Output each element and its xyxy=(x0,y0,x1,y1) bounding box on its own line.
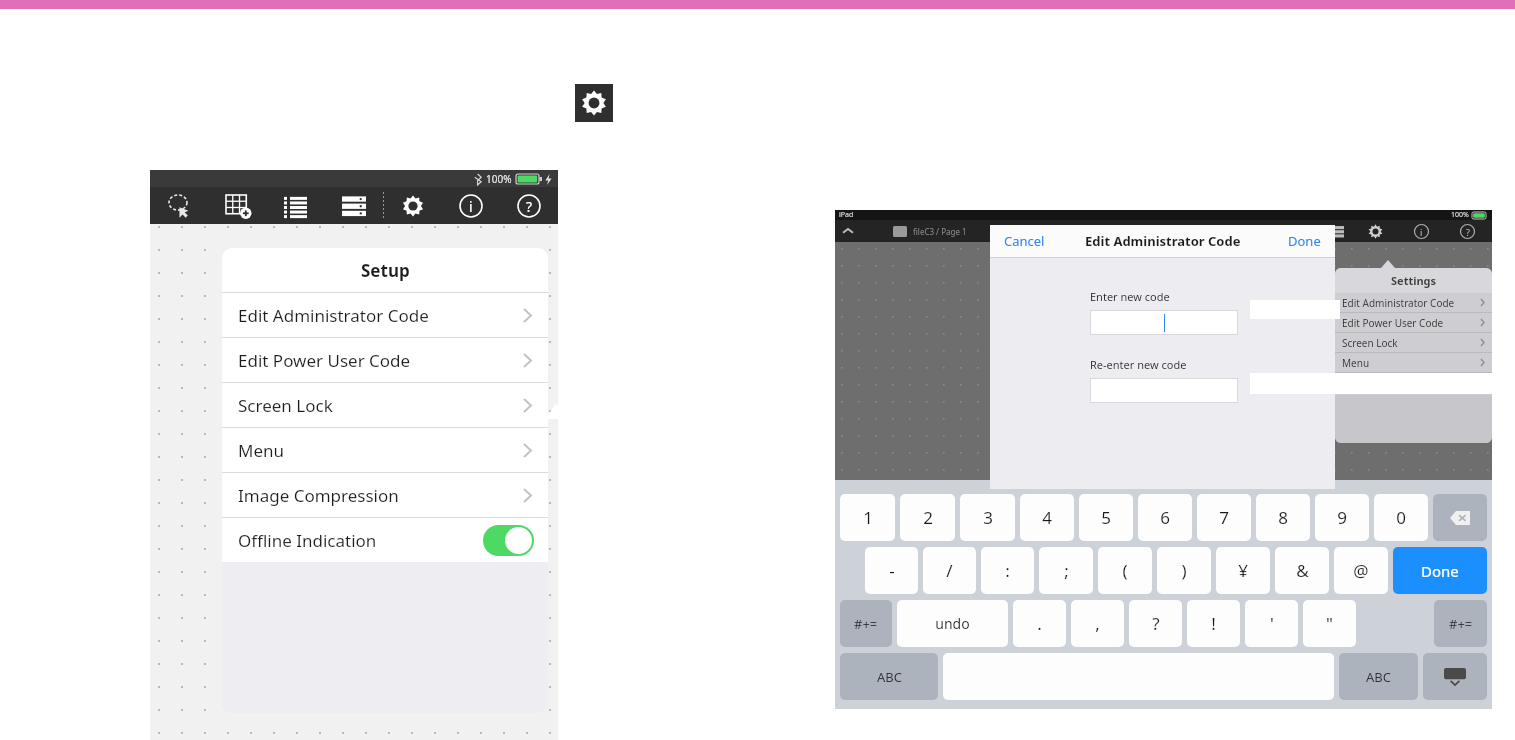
button[interactable]: Backspace xyxy=(1433,494,1487,541)
button[interactable]: 8 xyxy=(1256,494,1310,541)
button[interactable]: Edit Administrator Code xyxy=(222,293,548,337)
staticText: #+= xyxy=(1449,615,1473,633)
button[interactable]: . xyxy=(1013,600,1066,647)
button[interactable]: ! xyxy=(1187,600,1240,647)
button[interactable]: Image Compression xyxy=(222,473,548,517)
button[interactable]: 7 xyxy=(1197,494,1251,541)
button[interactable]: ) xyxy=(1157,547,1211,594)
staticText: ? xyxy=(1152,612,1160,635)
button[interactable]: Info xyxy=(1410,220,1432,242)
button[interactable]: Settings xyxy=(1364,220,1386,242)
button[interactable]: ; xyxy=(1039,547,1093,594)
staticText: " xyxy=(1326,612,1333,635)
button[interactable]: - xyxy=(865,547,918,594)
staticText: : xyxy=(1005,559,1010,582)
button[interactable]: ( xyxy=(1098,547,1152,594)
staticText: i xyxy=(1420,226,1423,238)
staticText: #+= xyxy=(854,615,878,633)
button[interactable]: #+= xyxy=(1434,600,1487,647)
button[interactable]: Cancel xyxy=(1004,232,1045,250)
staticText: Edit Power User Code xyxy=(1342,316,1444,330)
staticText: ABC xyxy=(1366,668,1391,686)
button[interactable]: , xyxy=(1071,600,1124,647)
button[interactable]: Layers xyxy=(1326,220,1348,242)
button[interactable]: Layers xyxy=(325,187,383,224)
staticText: ) xyxy=(1181,559,1187,582)
staticText: 100% xyxy=(1451,210,1469,220)
button[interactable]: ¥ xyxy=(1216,547,1270,594)
button[interactable]: 2 xyxy=(900,494,955,541)
button[interactable]: Edit Administrator Code xyxy=(1335,293,1492,312)
staticText: Enter new code xyxy=(1090,289,1170,304)
button[interactable]: Info xyxy=(442,187,500,224)
staticText: 9 xyxy=(1337,506,1347,529)
staticText: , xyxy=(1095,612,1100,635)
staticText: ? xyxy=(1466,226,1470,238)
button[interactable]: Menu xyxy=(1335,353,1492,372)
staticText: fileC3 / Page 1 xyxy=(913,226,967,237)
button[interactable]: Hide keyboard xyxy=(1423,653,1487,700)
staticText: ¥ xyxy=(1238,559,1248,582)
staticText: / xyxy=(946,559,953,582)
button[interactable]: Help xyxy=(1456,220,1478,242)
staticText: undo xyxy=(935,614,970,633)
staticText: 2 xyxy=(923,506,933,529)
button[interactable]: Edit Power User Code xyxy=(222,338,548,382)
button[interactable]: & xyxy=(1275,547,1329,594)
button[interactable]: List xyxy=(267,187,325,224)
button[interactable]: Screen Lock xyxy=(1335,333,1492,352)
button[interactable]: Screen Lock xyxy=(222,383,548,427)
button[interactable]: Done xyxy=(1393,547,1487,594)
button[interactable]: Offline Indication xyxy=(222,518,548,562)
staticText: Screen Lock xyxy=(238,394,333,417)
staticText: 1 xyxy=(863,506,873,529)
button[interactable]: undo xyxy=(897,600,1008,647)
button[interactable]: Settings xyxy=(384,187,442,224)
staticText: Edit Administrator Code xyxy=(1085,232,1241,250)
staticText: ABC xyxy=(877,668,902,686)
staticText: Done xyxy=(1421,561,1459,581)
button[interactable]: 6 xyxy=(1138,494,1192,541)
button[interactable]: ? xyxy=(1129,600,1182,647)
button[interactable]: Help xyxy=(500,187,558,224)
button[interactable]: Show Menu Button xyxy=(1335,373,1492,395)
button[interactable]: Done xyxy=(1288,232,1321,250)
button[interactable]: 0 xyxy=(1374,494,1428,541)
staticText: & xyxy=(1296,559,1309,582)
staticText: Offline Indication xyxy=(238,529,377,552)
staticText: - xyxy=(889,559,895,582)
staticText: ; xyxy=(1064,559,1069,582)
button[interactable]: 5 xyxy=(1079,494,1133,541)
button[interactable]: Edit Power User Code xyxy=(1335,313,1492,332)
staticText: 5 xyxy=(1101,506,1111,529)
staticText: Re-enter new code xyxy=(1090,357,1187,372)
staticText: @ xyxy=(1353,559,1369,582)
button[interactable]: Lasso select xyxy=(150,187,209,224)
button[interactable]: ' xyxy=(1245,600,1298,647)
staticText: 3 xyxy=(983,506,993,529)
button[interactable]: Menu xyxy=(222,428,548,472)
button[interactable]: #+= xyxy=(840,600,892,647)
staticText: ' xyxy=(1270,612,1274,635)
staticText: Edit Administrator Code xyxy=(238,304,429,327)
button[interactable]: " xyxy=(1303,600,1356,647)
button[interactable]: 3 xyxy=(960,494,1015,541)
button[interactable]: / xyxy=(923,547,976,594)
staticText: Settings xyxy=(1391,273,1437,288)
staticText: Edit Power User Code xyxy=(238,349,411,372)
staticText: 0 xyxy=(1396,506,1406,529)
staticText: Setup xyxy=(361,259,410,282)
staticText: Edit Administrator Code xyxy=(1342,296,1455,310)
button[interactable]: ABC xyxy=(840,653,938,700)
staticText: iPad xyxy=(839,210,854,220)
button[interactable]: 9 xyxy=(1315,494,1369,541)
button[interactable]: 4 xyxy=(1020,494,1074,541)
button[interactable]: ABC xyxy=(1339,653,1418,700)
button[interactable]: : xyxy=(981,547,1034,594)
button[interactable]: Add table xyxy=(209,187,267,224)
staticText: Menu xyxy=(1342,356,1370,370)
staticText: 8 xyxy=(1278,506,1288,529)
button[interactable]: 1 xyxy=(840,494,895,541)
button[interactable]: @ xyxy=(1334,547,1388,594)
